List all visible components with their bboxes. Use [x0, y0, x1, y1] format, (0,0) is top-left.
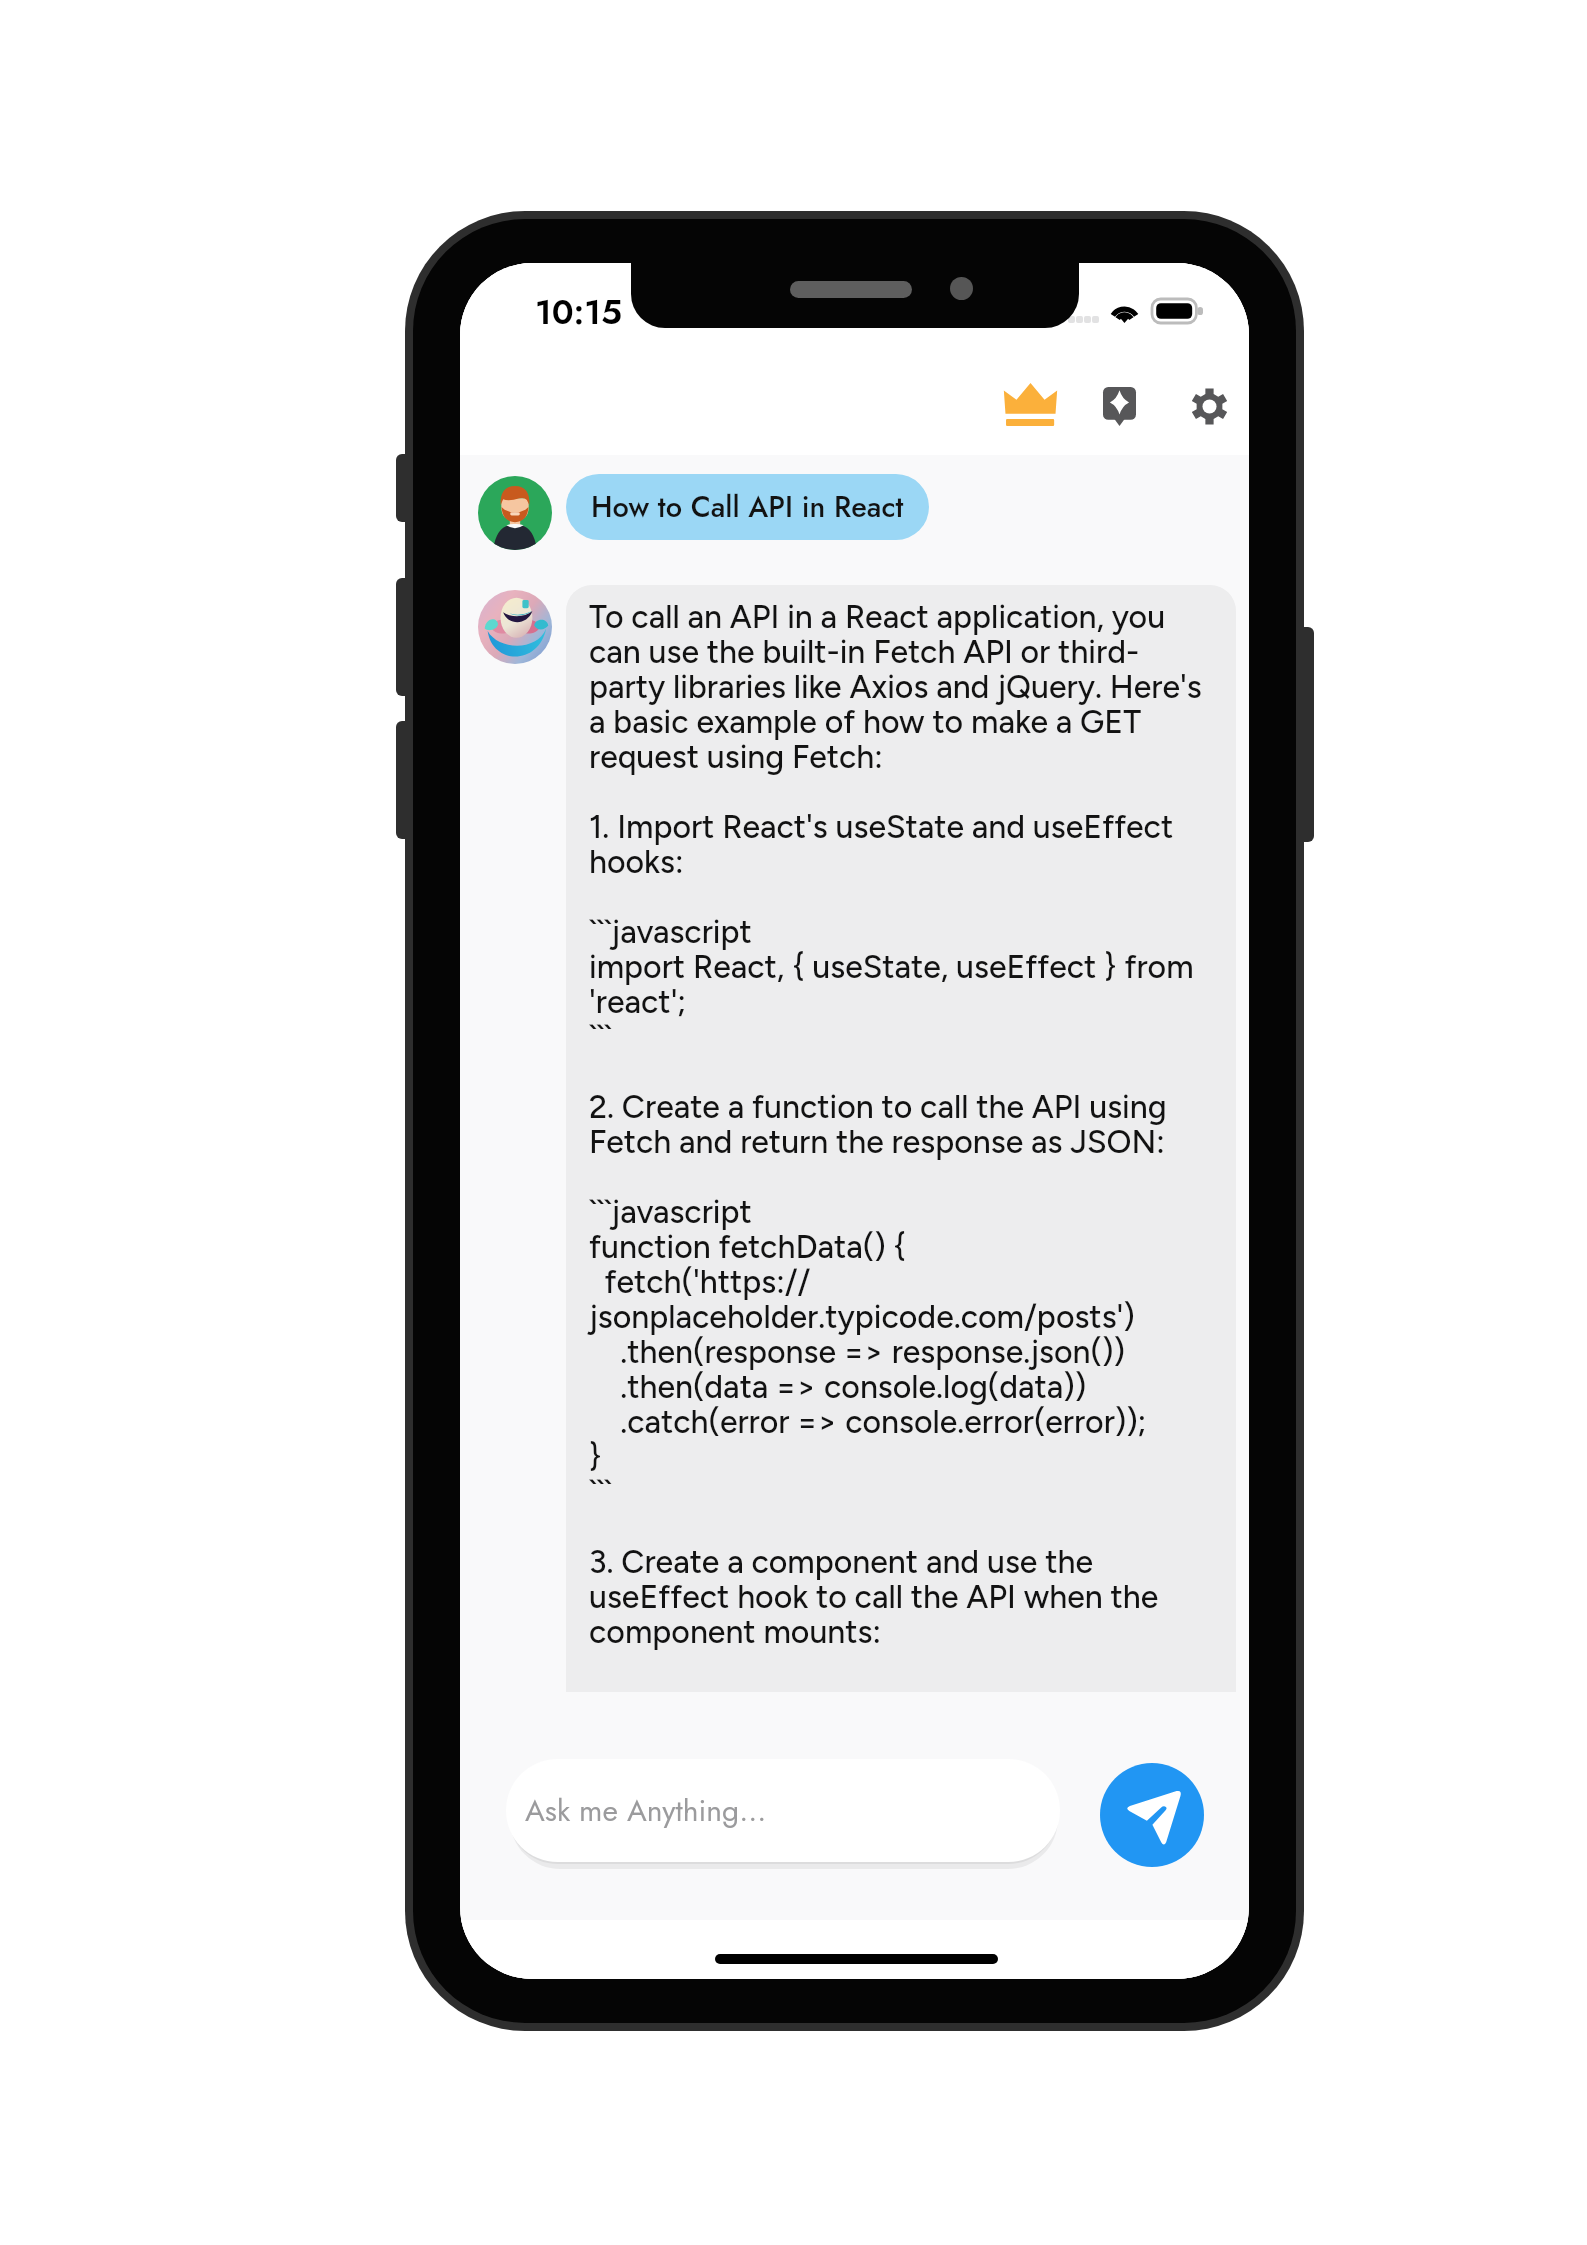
button[interactable]: New chat — [1086, 372, 1153, 441]
staticText: Ask me Anything... — [525, 1789, 767, 1832]
button[interactable]: How to Call API in React — [566, 474, 929, 540]
button[interactable]: To call an API in a React application, y… — [566, 585, 1236, 1692]
button[interactable]: Premium — [990, 370, 1071, 439]
staticText: 10:15 — [535, 288, 623, 337]
button[interactable]: Ask me Anything... — [506, 1759, 1060, 1862]
staticText: To call an API in a React application, y… — [589, 600, 1214, 1650]
button[interactable]: Send — [1100, 1763, 1204, 1867]
button[interactable]: Settings — [1175, 372, 1243, 441]
staticText: How to Call API in React — [591, 486, 904, 528]
